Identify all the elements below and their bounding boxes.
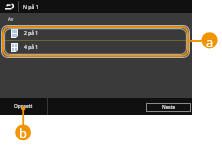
- staticText: 4 på 1: [24, 44, 39, 51]
- button[interactable]: Oppsett: [0, 98, 47, 115]
- button[interactable]: 4 på 1: [5, 41, 186, 54]
- staticText: b: [19, 124, 27, 141]
- button[interactable]: [1, 25, 190, 58]
- staticText: Av: [8, 16, 14, 22]
- button[interactable]: Neste: [146, 103, 191, 112]
- button[interactable]: 2 på 1: [5, 27, 186, 40]
- staticText: a: [206, 33, 214, 50]
- staticText: N på 1: [23, 3, 39, 10]
- button[interactable]: Back: [0, 0, 18, 13]
- staticText: Neste: [162, 104, 176, 111]
- staticText: Oppsett: [14, 103, 33, 110]
- staticText: 2 på 1: [24, 30, 39, 37]
